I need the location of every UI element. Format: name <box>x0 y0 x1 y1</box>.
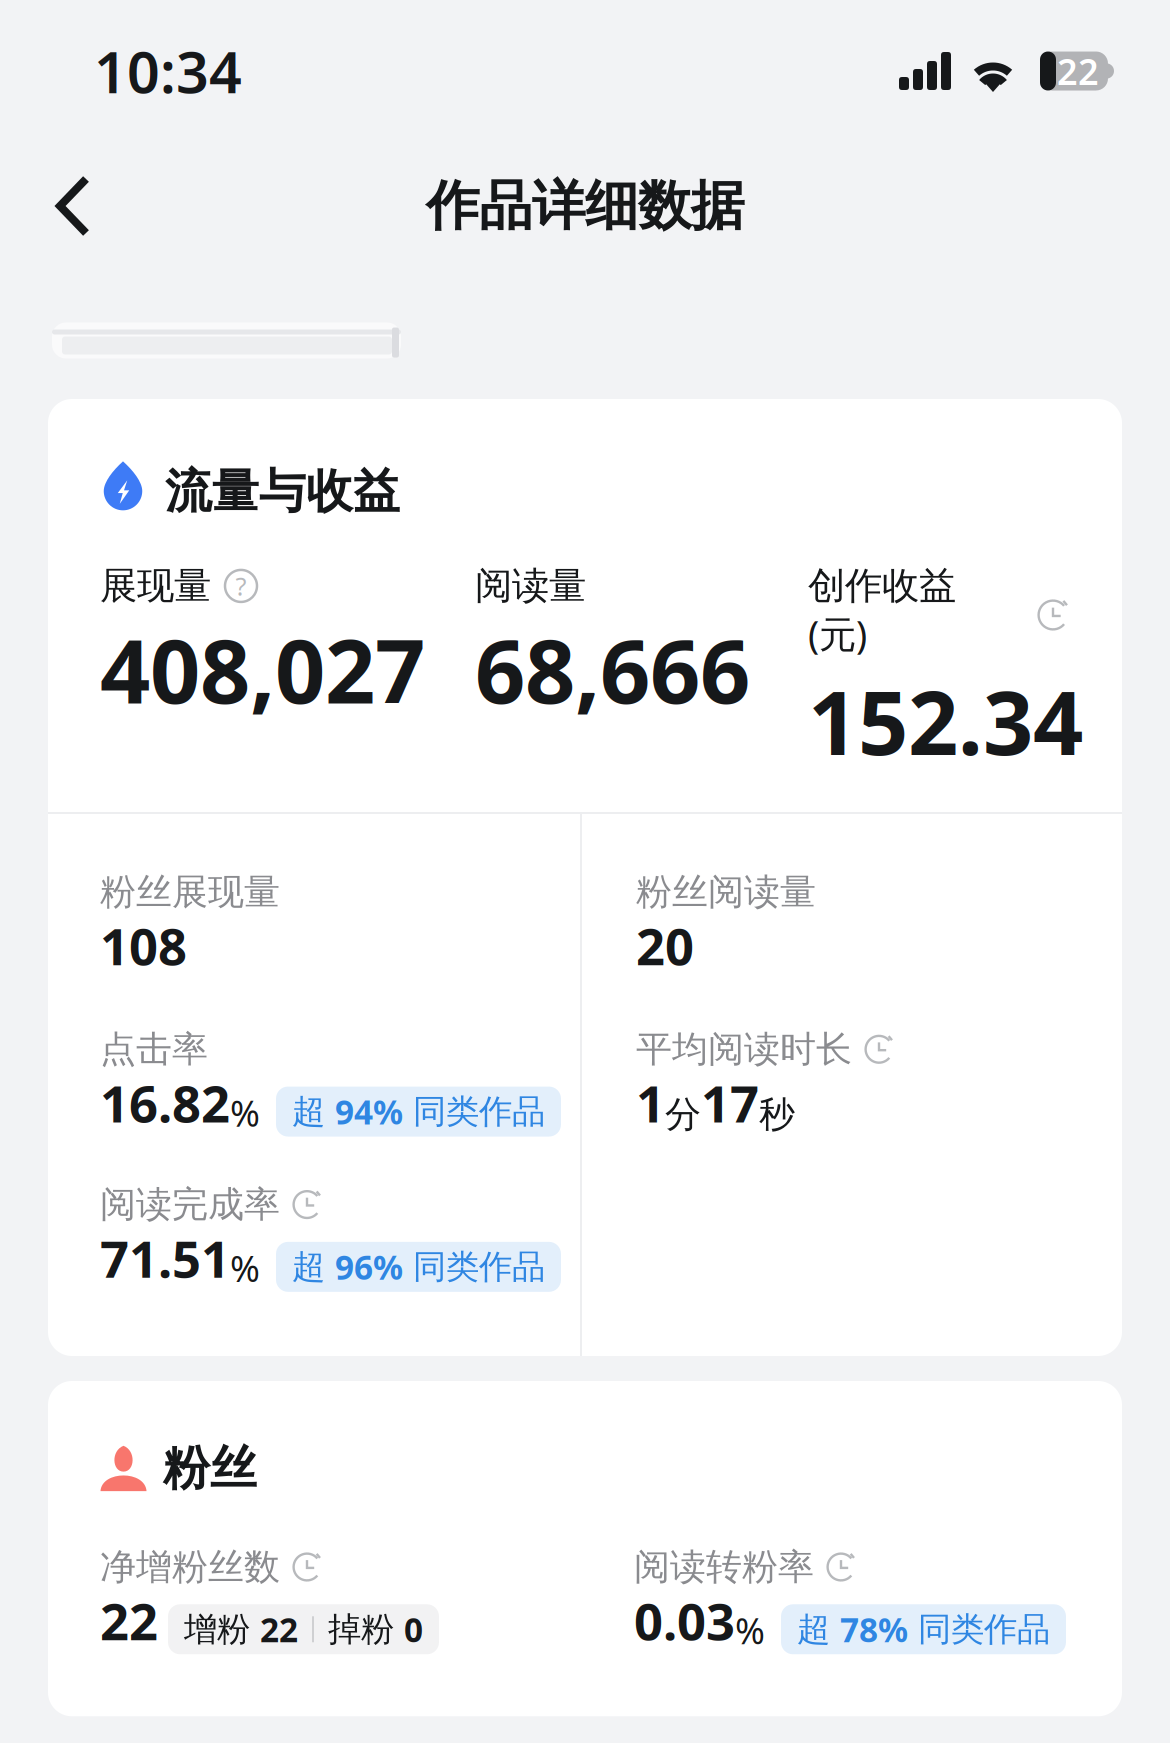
staticText: 1 <box>636 1069 665 1137</box>
staticText: 净增粉丝数 <box>100 1545 280 1589</box>
staticText: 作品详细数据 <box>426 173 744 239</box>
staticText: 分 <box>665 1092 701 1137</box>
staticText: 平均阅读时长 <box>636 1027 852 1071</box>
staticText: 粉丝 <box>163 1440 257 1497</box>
staticText: 17 <box>701 1069 759 1137</box>
staticText: 68,666 <box>475 611 750 728</box>
staticText: 0 <box>404 1607 423 1651</box>
staticText: 秒 <box>759 1092 795 1137</box>
staticText: 展现量 <box>100 563 211 609</box>
staticText: % <box>230 1244 260 1292</box>
staticText: 粉丝阅读量 <box>636 870 816 914</box>
staticText: 0.03 <box>634 1587 735 1654</box>
staticText: 阅读量 <box>475 563 586 609</box>
button[interactable]: 返回 <box>30 154 116 258</box>
staticText: 增粉 <box>184 1609 260 1650</box>
staticText: 408,027 <box>100 611 425 728</box>
staticText: % <box>230 1089 260 1137</box>
staticText: 20 <box>636 912 694 979</box>
staticText: 22 <box>100 1587 158 1654</box>
staticText: 71.51 <box>100 1225 230 1292</box>
staticText: 粉丝展现量 <box>100 870 280 914</box>
staticText: 掉粉 <box>328 1609 404 1650</box>
staticText: 108 <box>100 912 187 979</box>
staticText: ? <box>235 569 246 603</box>
staticText: 创作收益 <box>808 563 956 609</box>
staticText: % <box>735 1606 765 1654</box>
staticText: 94% <box>335 1089 403 1134</box>
staticText: 22 <box>1057 47 1099 95</box>
staticText: 96% <box>335 1245 403 1289</box>
staticText: 阅读转粉率 <box>634 1545 814 1589</box>
staticText: 10:34 <box>94 33 242 109</box>
staticText: 流量与收益 <box>165 463 400 520</box>
staticText: 超 <box>292 1091 335 1132</box>
staticText: 16.82 <box>100 1069 230 1137</box>
staticText: 152.34 <box>808 662 1083 779</box>
staticText: 同类作品 <box>908 1609 1050 1650</box>
staticText: 超 <box>292 1246 335 1287</box>
staticText: 同类作品 <box>403 1091 545 1132</box>
staticText: 阅读完成率 <box>100 1182 280 1227</box>
staticText: 同类作品 <box>403 1246 545 1287</box>
staticText: 点击率 <box>100 1027 208 1071</box>
staticText: 78% <box>840 1607 908 1651</box>
staticText: 超 <box>797 1609 840 1650</box>
staticText: (元) <box>808 609 867 658</box>
staticText: 22 <box>260 1607 298 1651</box>
